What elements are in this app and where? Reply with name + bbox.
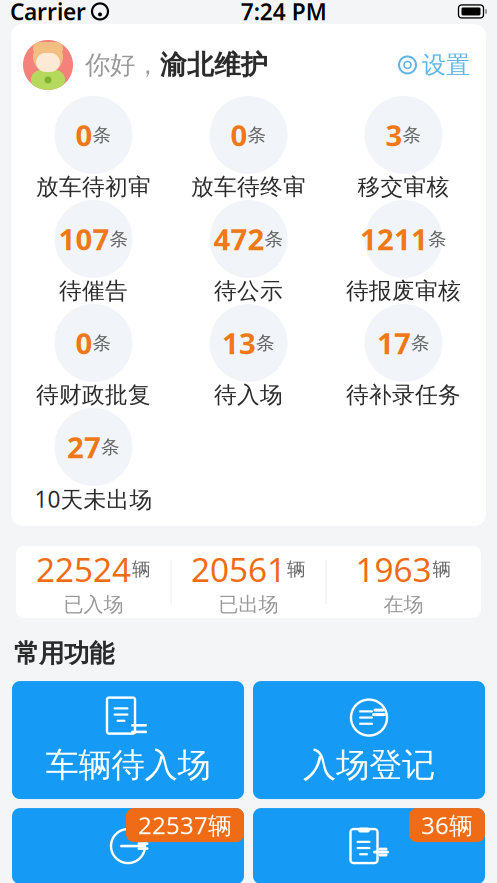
staticText: 条 xyxy=(256,331,275,354)
button[interactable]: 36辆 xyxy=(253,808,485,883)
staticText: 22537辆 xyxy=(138,809,232,841)
staticText: 472 xyxy=(213,219,264,258)
staticText: 22524 xyxy=(36,547,131,591)
staticText: 条 xyxy=(428,227,447,250)
staticText: 27 xyxy=(67,427,101,466)
staticText: 移交审核 xyxy=(357,173,449,201)
button[interactable]: 入场登记 xyxy=(253,681,485,799)
staticText xyxy=(85,0,91,26)
staticText: 0 xyxy=(75,323,92,362)
button[interactable]: 0 xyxy=(171,96,326,200)
button[interactable]: 20561 xyxy=(171,546,325,618)
staticText: 你好， xyxy=(85,49,160,80)
staticText: 10天未出场 xyxy=(34,484,152,514)
staticText: 设置 xyxy=(422,50,470,80)
staticText: 放车待初审 xyxy=(36,173,151,201)
staticText: 条 xyxy=(264,227,283,250)
staticText: 13 xyxy=(222,323,256,362)
staticText: 待补录任务 xyxy=(346,381,461,409)
staticText: 辆 xyxy=(287,558,306,581)
button[interactable]: 1963 xyxy=(326,546,480,618)
staticText: 0 xyxy=(75,115,92,154)
staticText: 条 xyxy=(101,435,120,458)
staticText: 3 xyxy=(385,115,402,154)
button[interactable]: 1211 xyxy=(326,200,481,304)
staticText: 在场 xyxy=(383,592,423,617)
button[interactable]: 13 xyxy=(171,304,326,408)
staticText: 渝北维护 xyxy=(160,49,268,81)
staticText: 1963 xyxy=(355,547,431,591)
button[interactable]: 车辆待入场 xyxy=(12,681,244,799)
staticText: 条 xyxy=(402,123,421,146)
button[interactable]: 22524 xyxy=(16,546,170,618)
staticText: Carrier xyxy=(10,0,86,26)
staticText: 待入场 xyxy=(214,381,283,409)
staticText: 36辆 xyxy=(421,809,473,841)
staticText: 待财政批复 xyxy=(36,381,151,409)
staticText: 放车待终审 xyxy=(191,173,306,201)
button[interactable]: 107 xyxy=(16,200,171,304)
staticText: 条 xyxy=(109,227,128,250)
button[interactable]: 0 xyxy=(16,96,171,200)
staticText: 待报废审核 xyxy=(346,277,461,305)
staticText: 条 xyxy=(92,331,111,354)
staticText: 车辆待入场 xyxy=(45,745,210,785)
staticText: 1211 xyxy=(360,219,428,258)
staticText: 待催告 xyxy=(59,277,128,305)
staticText: 辆 xyxy=(132,558,151,581)
staticText: 条 xyxy=(92,123,111,146)
staticText: 已入场 xyxy=(63,592,123,617)
staticText: 条 xyxy=(247,123,266,146)
button[interactable]: 22537辆 xyxy=(12,808,244,883)
button[interactable]: 设置 xyxy=(392,44,476,86)
staticText: 0 xyxy=(230,115,247,154)
staticText: 20561 xyxy=(191,547,286,591)
staticText: 条 xyxy=(411,331,430,354)
staticText: 常用功能 xyxy=(14,638,114,669)
staticText: 7:24 PM xyxy=(241,0,327,26)
button[interactable]: 27 xyxy=(16,408,171,512)
button[interactable]: 17 xyxy=(326,304,481,408)
staticText: 入场登记 xyxy=(303,745,435,785)
button[interactable]: 3 xyxy=(326,96,481,200)
staticText: 17 xyxy=(377,323,411,362)
button[interactable]: 472 xyxy=(171,200,326,304)
button[interactable]: 0 xyxy=(16,304,171,408)
staticText: 已出场 xyxy=(218,592,278,617)
staticText: 107 xyxy=(58,219,109,258)
staticText: 辆 xyxy=(432,558,451,581)
staticText: 待公示 xyxy=(214,277,283,305)
